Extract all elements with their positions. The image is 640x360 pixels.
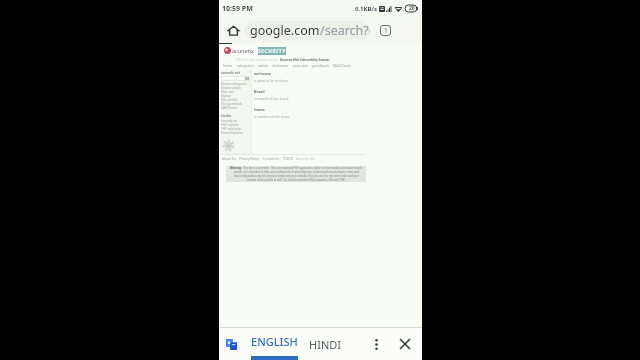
staticText: Warning:: [230, 166, 243, 170]
button[interactable]: Contact Us: [263, 157, 280, 161]
button[interactable]: ©2019: [283, 157, 293, 161]
staticText: acunetix: [232, 47, 254, 54]
staticText: 20: [409, 5, 415, 12]
button[interactable]: AJAX Demo: [221, 106, 237, 110]
button[interactable]: Translate: [223, 336, 239, 352]
button[interactable]: Security art: [221, 119, 238, 123]
button[interactable]: HINDI: [309, 337, 341, 352]
button[interactable]: Fractal Explorer: [221, 131, 243, 135]
button[interactable]: google.com: [244, 21, 370, 40]
staticText: items: [254, 107, 265, 112]
staticText: google.com: [250, 22, 320, 39]
button[interactable]: Tabs: [377, 22, 394, 39]
button[interactable]: your cart: [293, 63, 308, 68]
button[interactable]: Signup: [221, 94, 231, 98]
button[interactable]: Browse artists: [221, 86, 241, 90]
staticText: manual hacking skills as well. Tip: look…: [247, 178, 346, 182]
button[interactable]: Your profile: [221, 98, 238, 102]
button[interactable]: PHP vuln help: [221, 127, 241, 131]
staticText: ENGLISH: [251, 334, 298, 349]
button[interactable]: guestbook: [312, 63, 329, 68]
staticText: attacks. It is intended to help you test…: [234, 170, 360, 174]
staticText: a number of the items: [254, 114, 290, 119]
button[interactable]: Privacy Policy: [239, 157, 260, 161]
staticText: This site is vulnerable. This is an exam…: [243, 166, 363, 170]
staticText: /search?q: [320, 22, 370, 39]
button[interactable]: AJAX Demo: [333, 63, 351, 68]
button[interactable]: Our guestbook: [221, 102, 243, 106]
button[interactable]: artists: [258, 63, 268, 68]
button[interactable]: More options: [366, 334, 386, 354]
staticText: search art: [221, 70, 241, 75]
button[interactable]: disclaimer: [272, 63, 289, 68]
staticText: TEST and Demonstration site for: [236, 58, 280, 62]
staticText: Acunetix Web Vulnerability Scanner: [280, 58, 330, 62]
button[interactable]: Close: [395, 334, 415, 354]
button[interactable]: home: [223, 63, 233, 68]
staticText: Links: [221, 113, 231, 118]
staticText: welcome: [254, 71, 271, 76]
staticText: SECURITY: [258, 48, 286, 55]
button[interactable]: Your cart: [221, 90, 234, 94]
staticText: bad configuration may let someone break …: [234, 174, 359, 178]
staticText: a place to be to share: [254, 78, 289, 83]
staticText: Acunetix Ltd: [296, 157, 315, 161]
button[interactable]: PHP scanner: [221, 123, 239, 127]
button[interactable]: ENGLISH: [251, 328, 298, 360]
staticText: Brasil: [254, 89, 265, 94]
button[interactable]: Home: [225, 22, 242, 39]
staticText: 0.1KB/s: [355, 5, 378, 13]
staticText: 10:59 PM: [222, 4, 253, 14]
button[interactable]: About Us: [222, 157, 236, 161]
button[interactable]: categories: [237, 63, 254, 68]
staticText: 1: [384, 26, 388, 35]
button[interactable]: Browse categories: [221, 82, 247, 86]
staticText: reviewed of our brasil: [254, 96, 289, 101]
